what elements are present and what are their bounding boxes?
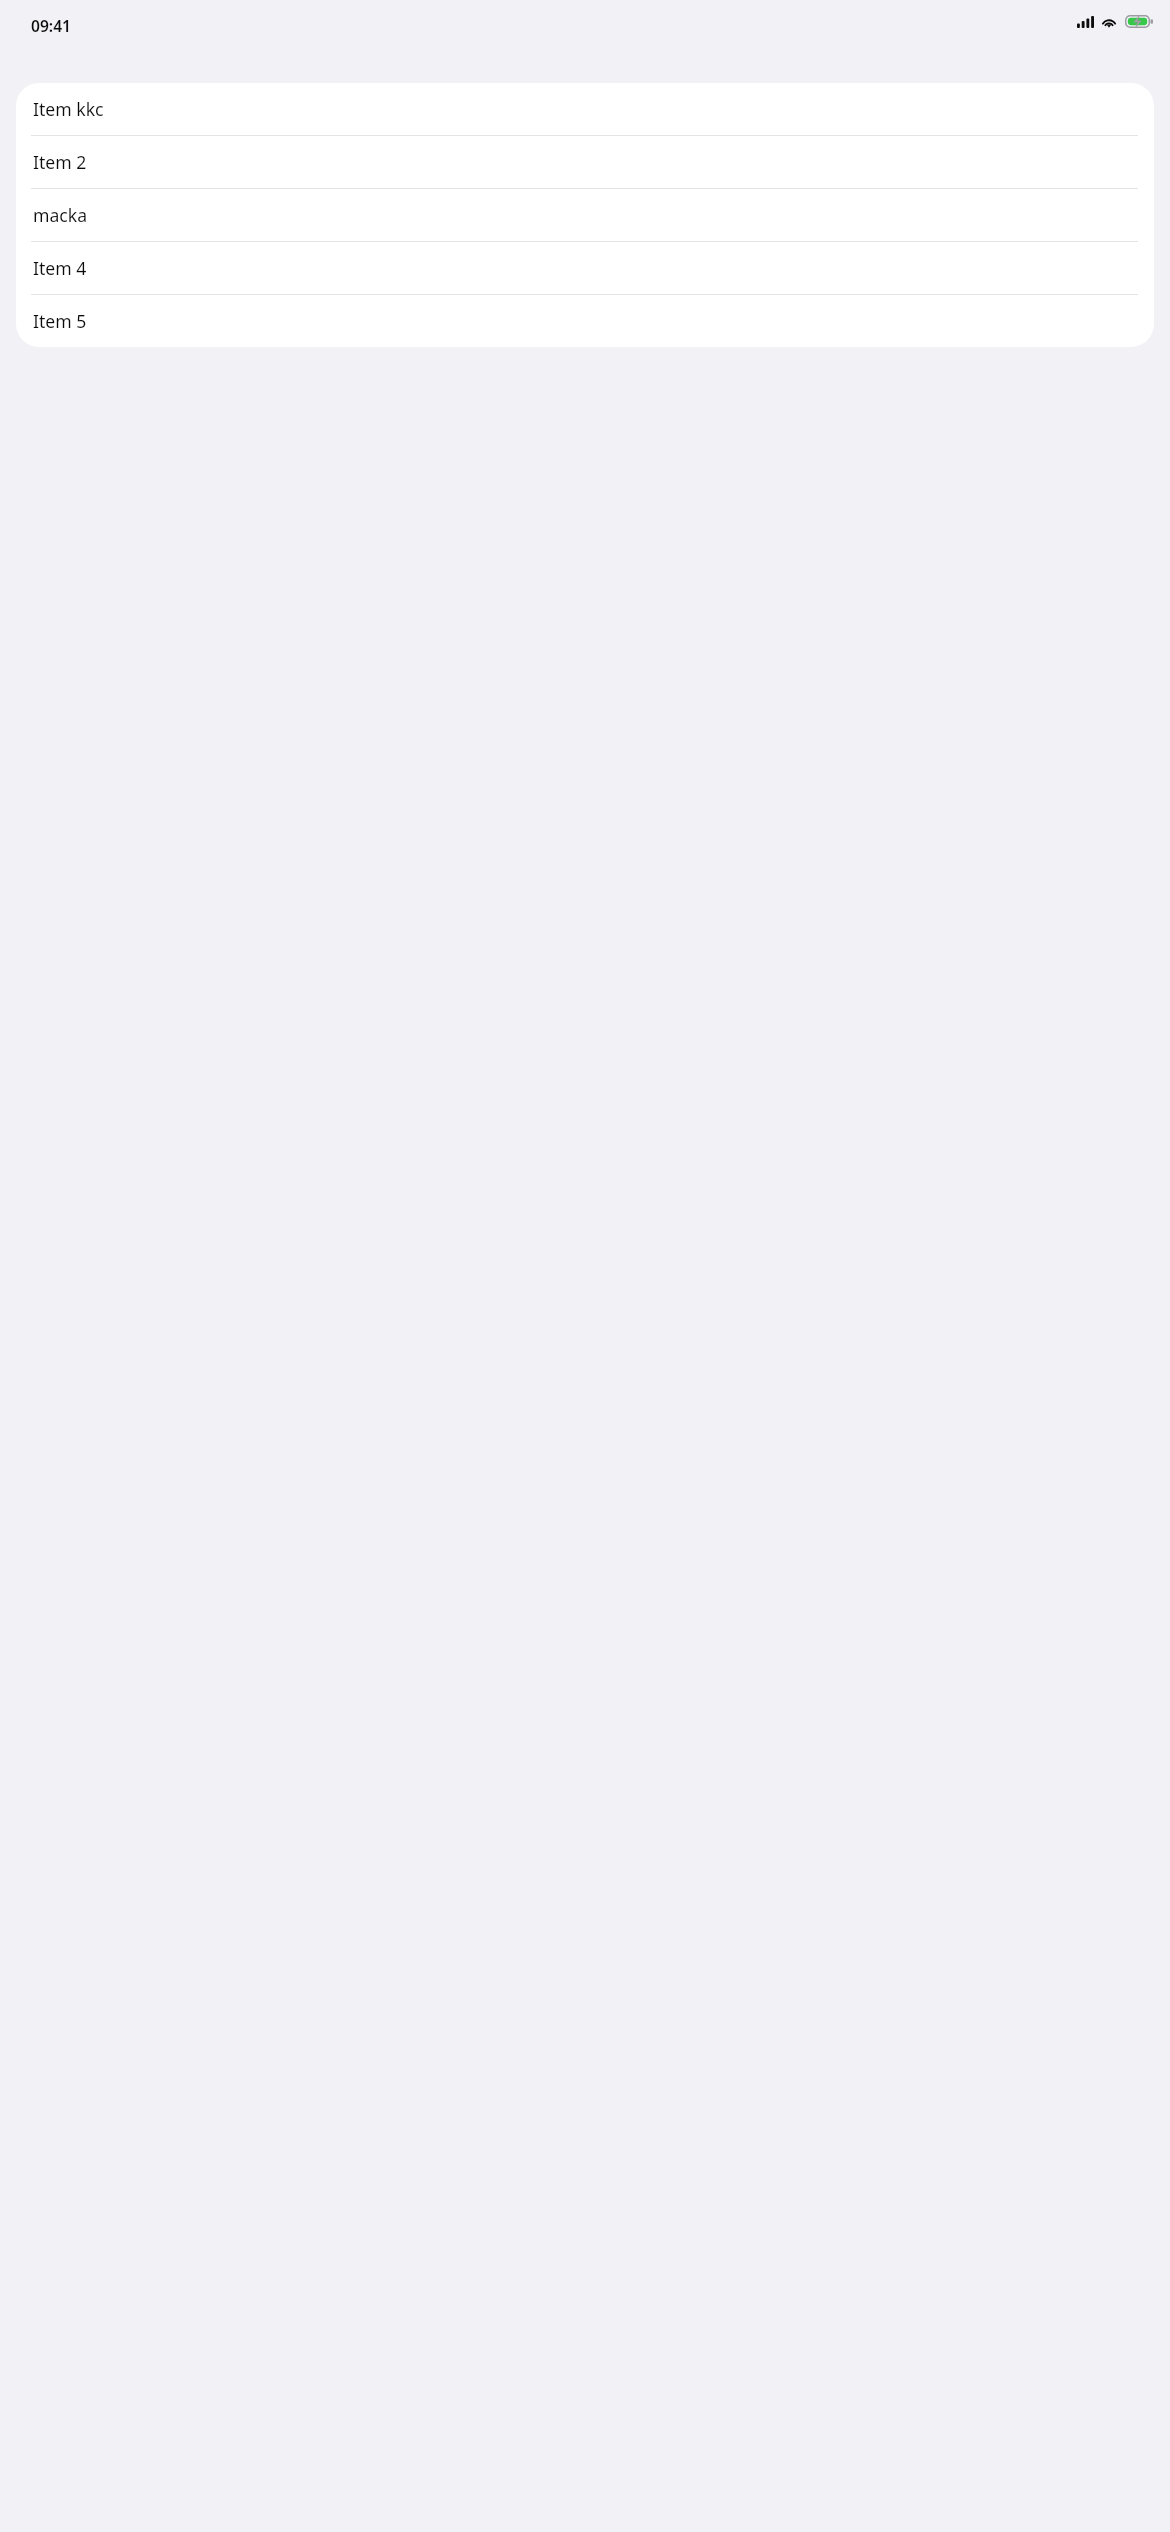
staticText: Item 2: [33, 150, 87, 174]
button[interactable]: Item 4: [16, 242, 1154, 294]
staticText: 09:41: [31, 15, 71, 36]
staticText: Item kkc: [33, 97, 104, 121]
staticText: macka: [33, 203, 88, 227]
button[interactable]: Item 5: [16, 295, 1154, 347]
staticText: Item 4: [33, 256, 87, 280]
button[interactable]: Item kkc: [16, 83, 1154, 135]
button[interactable]: macka: [16, 189, 1154, 241]
button[interactable]: Item 2: [16, 136, 1154, 188]
staticText: Item 5: [33, 309, 87, 333]
